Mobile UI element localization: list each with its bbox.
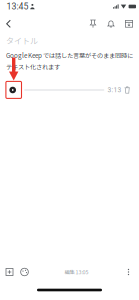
staticText: 3:13 [107,86,121,94]
button[interactable]: More options [121,265,136,279]
button[interactable]: Back [1,15,16,33]
staticText: 編集 13:05 [64,268,88,276]
button[interactable]: Delete recording [121,84,133,96]
staticText: Google Keep では話した言葉がそのまま同時にテキスト化されます [6,51,133,71]
button[interactable]: Play recording [5,82,20,97]
button[interactable]: Pin note [84,15,102,33]
staticText: タイトル [6,35,38,46]
button[interactable]: Archive [120,15,138,33]
button[interactable]: Background options [17,265,32,279]
button[interactable]: Reminder [102,15,120,33]
button[interactable]: Add attachment [2,265,17,279]
staticText: 13:45 [6,1,28,12]
